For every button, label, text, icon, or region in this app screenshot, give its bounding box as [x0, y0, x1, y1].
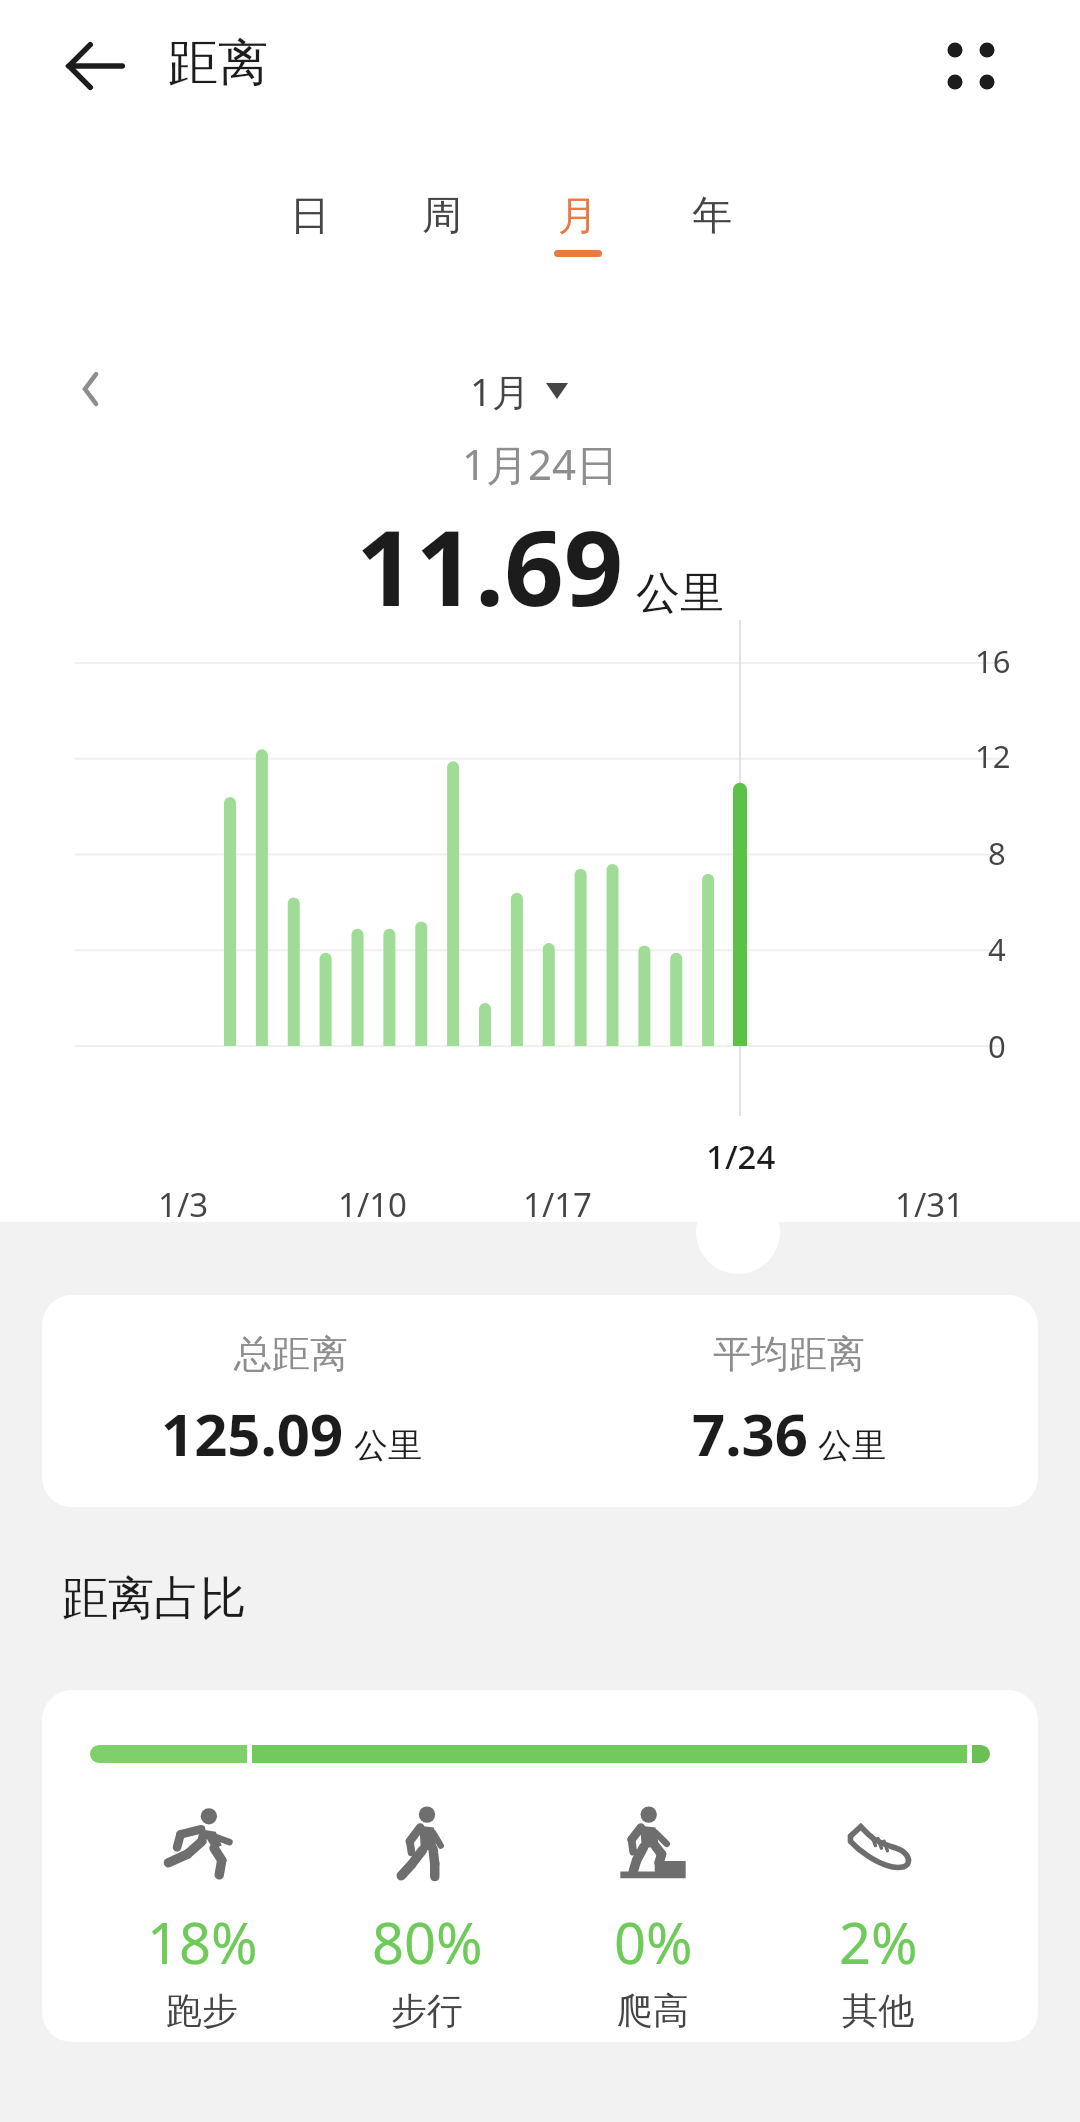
button[interactable]: 2%	[793, 1800, 963, 2033]
staticText: 公里	[818, 1424, 886, 1467]
button[interactable]: 18%	[117, 1800, 287, 2033]
staticText: 0	[988, 1025, 1006, 1067]
staticText: 总距离	[234, 1330, 348, 1378]
staticText: 1/17	[523, 1182, 592, 1227]
staticText: 平均距离	[713, 1330, 865, 1378]
button[interactable]: 80%	[342, 1800, 512, 2033]
staticText: 距离占比	[62, 1570, 246, 1628]
button[interactable]: 0%	[568, 1800, 738, 2033]
staticText: 日	[290, 190, 330, 240]
button[interactable]: More options	[930, 25, 1012, 107]
staticText: 周	[422, 190, 462, 240]
button[interactable]: 总距离	[42, 1295, 1038, 1507]
staticText: 2%	[839, 1904, 918, 1980]
staticText: 12	[975, 735, 1011, 777]
staticText: 1月	[470, 365, 530, 417]
staticText: 7.36	[692, 1394, 808, 1473]
button[interactable]: 日	[274, 190, 346, 276]
staticText: 11.69	[356, 495, 624, 637]
staticText: 125.09	[161, 1394, 344, 1473]
staticText: 1/10	[338, 1182, 407, 1227]
button[interactable]: 周	[406, 190, 478, 276]
staticText: 80%	[372, 1904, 483, 1980]
staticText: 1月24日	[462, 435, 619, 492]
staticText: 4	[988, 928, 1006, 970]
button[interactable]: Previous month	[62, 358, 124, 420]
button[interactable]: 18%	[42, 1690, 1038, 2042]
staticText: 爬高	[617, 1988, 689, 2033]
staticText: 其他	[842, 1988, 914, 2033]
button[interactable]: 1月	[470, 365, 568, 417]
staticText: 0%	[614, 1904, 693, 1980]
button[interactable]: 年	[676, 190, 748, 276]
staticText: 距离	[168, 32, 268, 95]
staticText: 公里	[354, 1424, 422, 1467]
staticText: 公里	[636, 566, 724, 621]
staticText: 1/31	[895, 1182, 964, 1227]
staticText: 步行	[391, 1988, 463, 2033]
button[interactable]: Back	[46, 25, 128, 107]
staticText: 年	[692, 190, 732, 240]
staticText: 8	[988, 832, 1006, 874]
staticText: 18%	[147, 1904, 258, 1980]
staticText: 跑步	[166, 1988, 238, 2033]
staticText: 1/24	[706, 1134, 776, 1179]
staticText: 月	[558, 190, 598, 240]
button[interactable]: 月	[542, 190, 614, 276]
staticText: 1/3	[158, 1182, 209, 1227]
staticText: 16	[975, 640, 1011, 682]
